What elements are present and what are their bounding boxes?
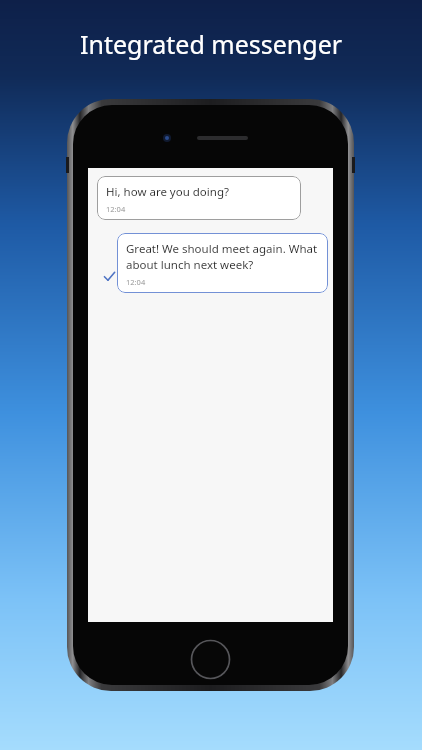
other: Message sent — [104, 271, 115, 282]
staticText: Great! We should meet again. What — [126, 241, 318, 257]
staticText: 12:04 — [126, 277, 146, 287]
button[interactable]: Great! We should meet again. What — [117, 233, 328, 293]
button[interactable]: Hi, how are you doing? — [97, 176, 301, 220]
staticText: 12:04 — [106, 204, 126, 214]
staticText: Hi, how are you doing? — [106, 184, 229, 200]
staticText: Integrated messenger — [80, 27, 343, 61]
button[interactable]: Home — [190, 639, 231, 680]
staticText: about lunch next week? — [126, 257, 254, 273]
